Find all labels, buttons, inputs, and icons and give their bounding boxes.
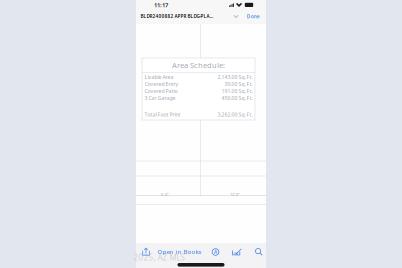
staticText: 30.00 Sq. Ft.: [224, 80, 252, 88]
button[interactable]: Done: [244, 9, 263, 23]
staticText: 2,143.00 Sq. Ft.: [217, 73, 252, 81]
staticText: 450.00 Sq. Ft.: [221, 94, 252, 102]
staticText: 11:17: [154, 1, 168, 9]
staticText: BLDR2400882 APPR BLDG-PLA…: [140, 13, 213, 19]
button[interactable]: Text options: [209, 245, 222, 258]
staticText: 12'-0": [230, 192, 240, 197]
button[interactable]: Share: [139, 245, 153, 259]
button[interactable]: Markup: [229, 245, 245, 258]
staticText: Total Foot Print: [145, 111, 181, 118]
staticText: Livable Area: [145, 73, 174, 81]
staticText: Covered Entry: [145, 80, 179, 88]
staticText: 3,262.00 Sq. Ft.: [217, 111, 252, 118]
staticText: 3 Car Garage: [145, 94, 176, 102]
staticText: A: [214, 249, 217, 255]
button[interactable]: Document options: [230, 11, 242, 22]
staticText: 191.00 Sq. Ft.: [221, 87, 252, 95]
staticText: Done: [247, 13, 260, 19]
staticText: 2025, AZ MLS: [133, 252, 184, 263]
button[interactable]: Open in Books: [154, 245, 204, 259]
staticText: Covered Patio: [145, 87, 178, 95]
staticText: 6'-4": [161, 192, 169, 197]
button[interactable]: Search: [252, 245, 265, 258]
staticText: Area Schedule:: [172, 60, 225, 70]
staticText: Open in Books: [157, 248, 201, 256]
